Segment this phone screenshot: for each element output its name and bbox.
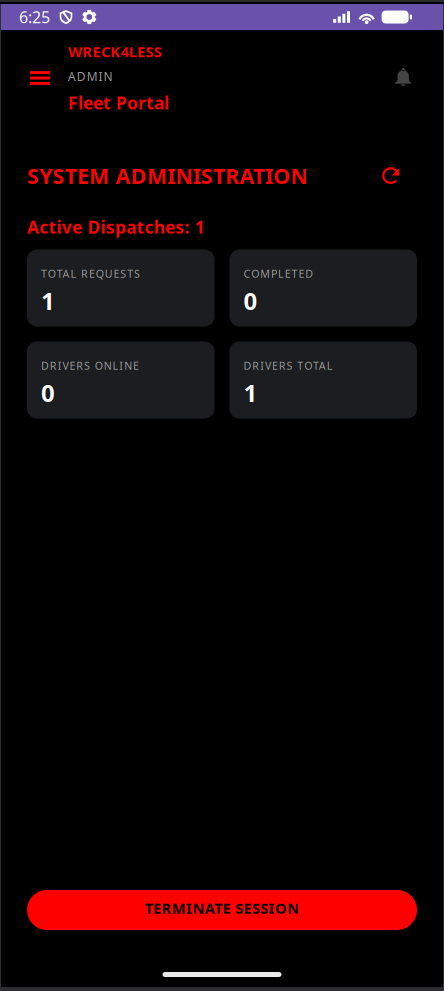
button[interactable]: Open menu <box>20 57 60 99</box>
staticText: 0 <box>41 377 55 408</box>
staticText: TERMINATE SESSION <box>145 898 299 918</box>
button[interactable]: Refresh <box>372 160 417 191</box>
staticText: 0 <box>243 285 257 316</box>
staticText: DRIVERS ONLINE <box>41 358 139 373</box>
staticText: Fleet Portal <box>68 91 169 114</box>
staticText: ADMIN <box>68 68 112 84</box>
staticText: COMPLETED <box>243 266 313 281</box>
staticText: SYSTEM ADMINISTRATION <box>27 162 307 190</box>
button[interactable]: Notifications <box>384 57 431 98</box>
staticText: 1 <box>243 377 257 408</box>
staticText: TOTAL REQUESTS <box>41 266 140 281</box>
staticText: WRECK4LESS <box>68 42 162 61</box>
staticText: 6:25 <box>19 6 50 28</box>
button[interactable]: TERMINATE SESSION <box>27 890 417 930</box>
staticText: DRIVERS TOTAL <box>243 358 333 373</box>
staticText: 1 <box>41 285 55 316</box>
staticText: Active Dispatches: 1 <box>27 215 205 238</box>
